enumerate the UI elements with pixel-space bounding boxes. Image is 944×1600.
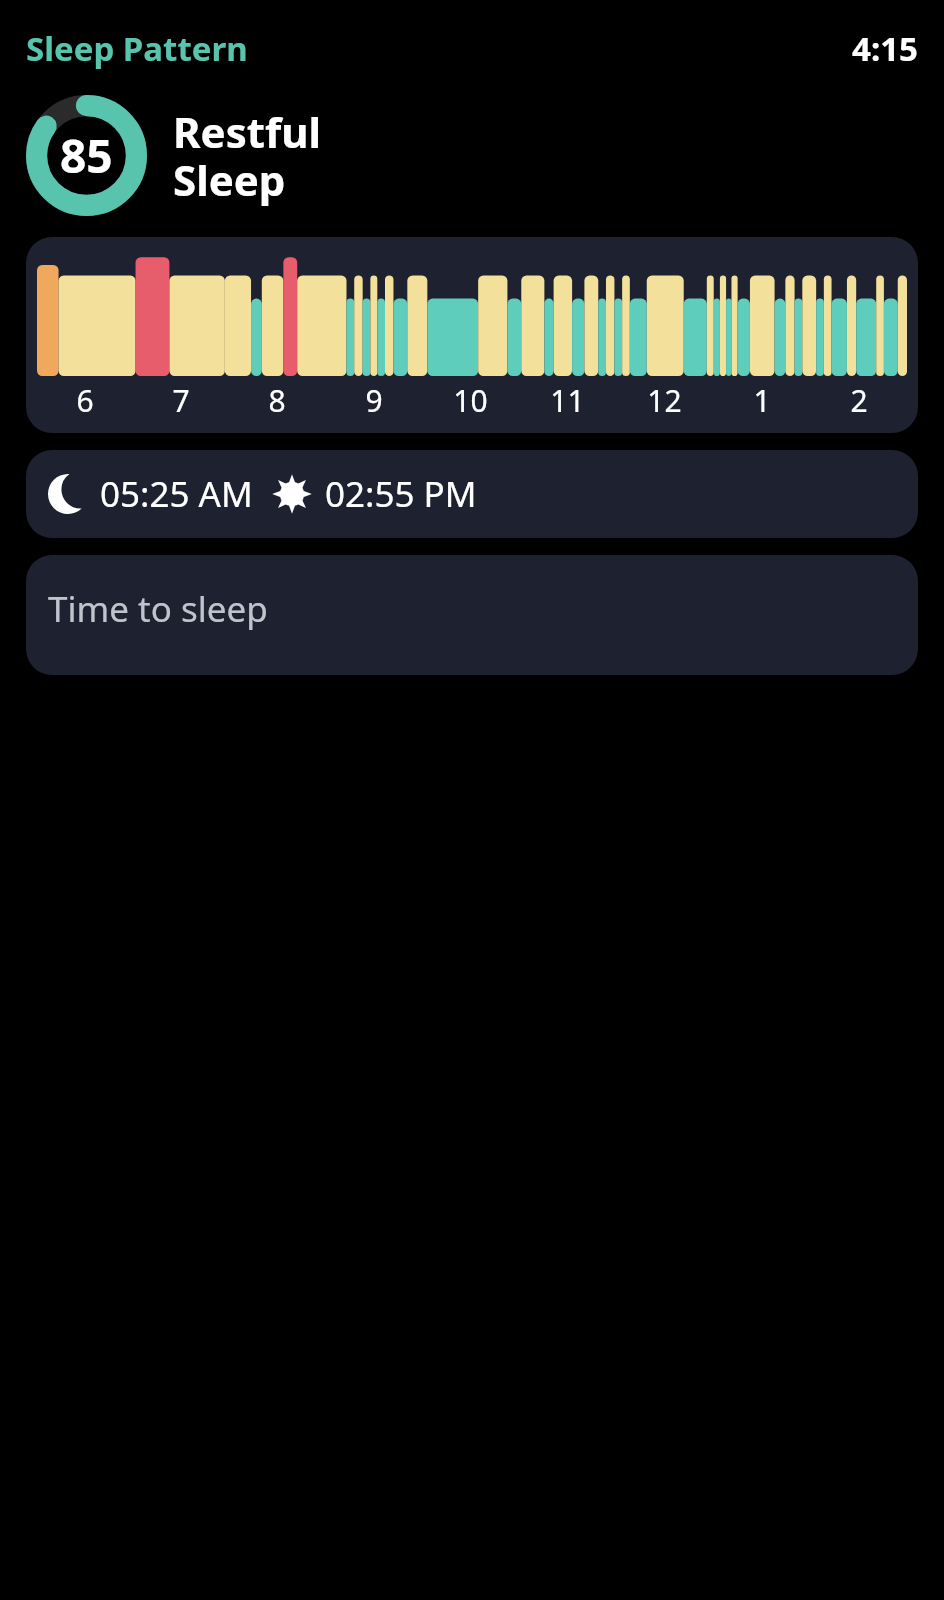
button[interactable]: Bedtime <box>26 450 918 538</box>
staticText: 02:55 PM <box>325 470 477 518</box>
other: Bedtime <box>48 474 88 514</box>
staticText: Sleep Pattern <box>26 26 248 71</box>
staticText: Time to sleep <box>48 585 268 633</box>
staticText: 8 <box>268 380 286 421</box>
staticText: 2 <box>850 380 868 421</box>
staticText: 6 <box>76 380 94 421</box>
staticText: 12 <box>647 380 682 421</box>
staticText: 10 <box>453 380 488 421</box>
staticText: 05:25 AM <box>100 470 253 518</box>
staticText: 11 <box>550 380 585 421</box>
staticText: 1 <box>753 380 771 421</box>
staticText: 85 <box>60 124 113 187</box>
button[interactable]: 6 <box>26 237 918 433</box>
other: Wake time <box>271 473 313 515</box>
button[interactable]: 85 <box>26 95 918 216</box>
staticText: Restful Sleep <box>173 103 322 209</box>
staticText: 7 <box>172 380 190 421</box>
button[interactable]: Time to sleep <box>26 555 918 675</box>
staticText: 4:15 <box>852 26 918 71</box>
staticText: 9 <box>365 380 383 421</box>
